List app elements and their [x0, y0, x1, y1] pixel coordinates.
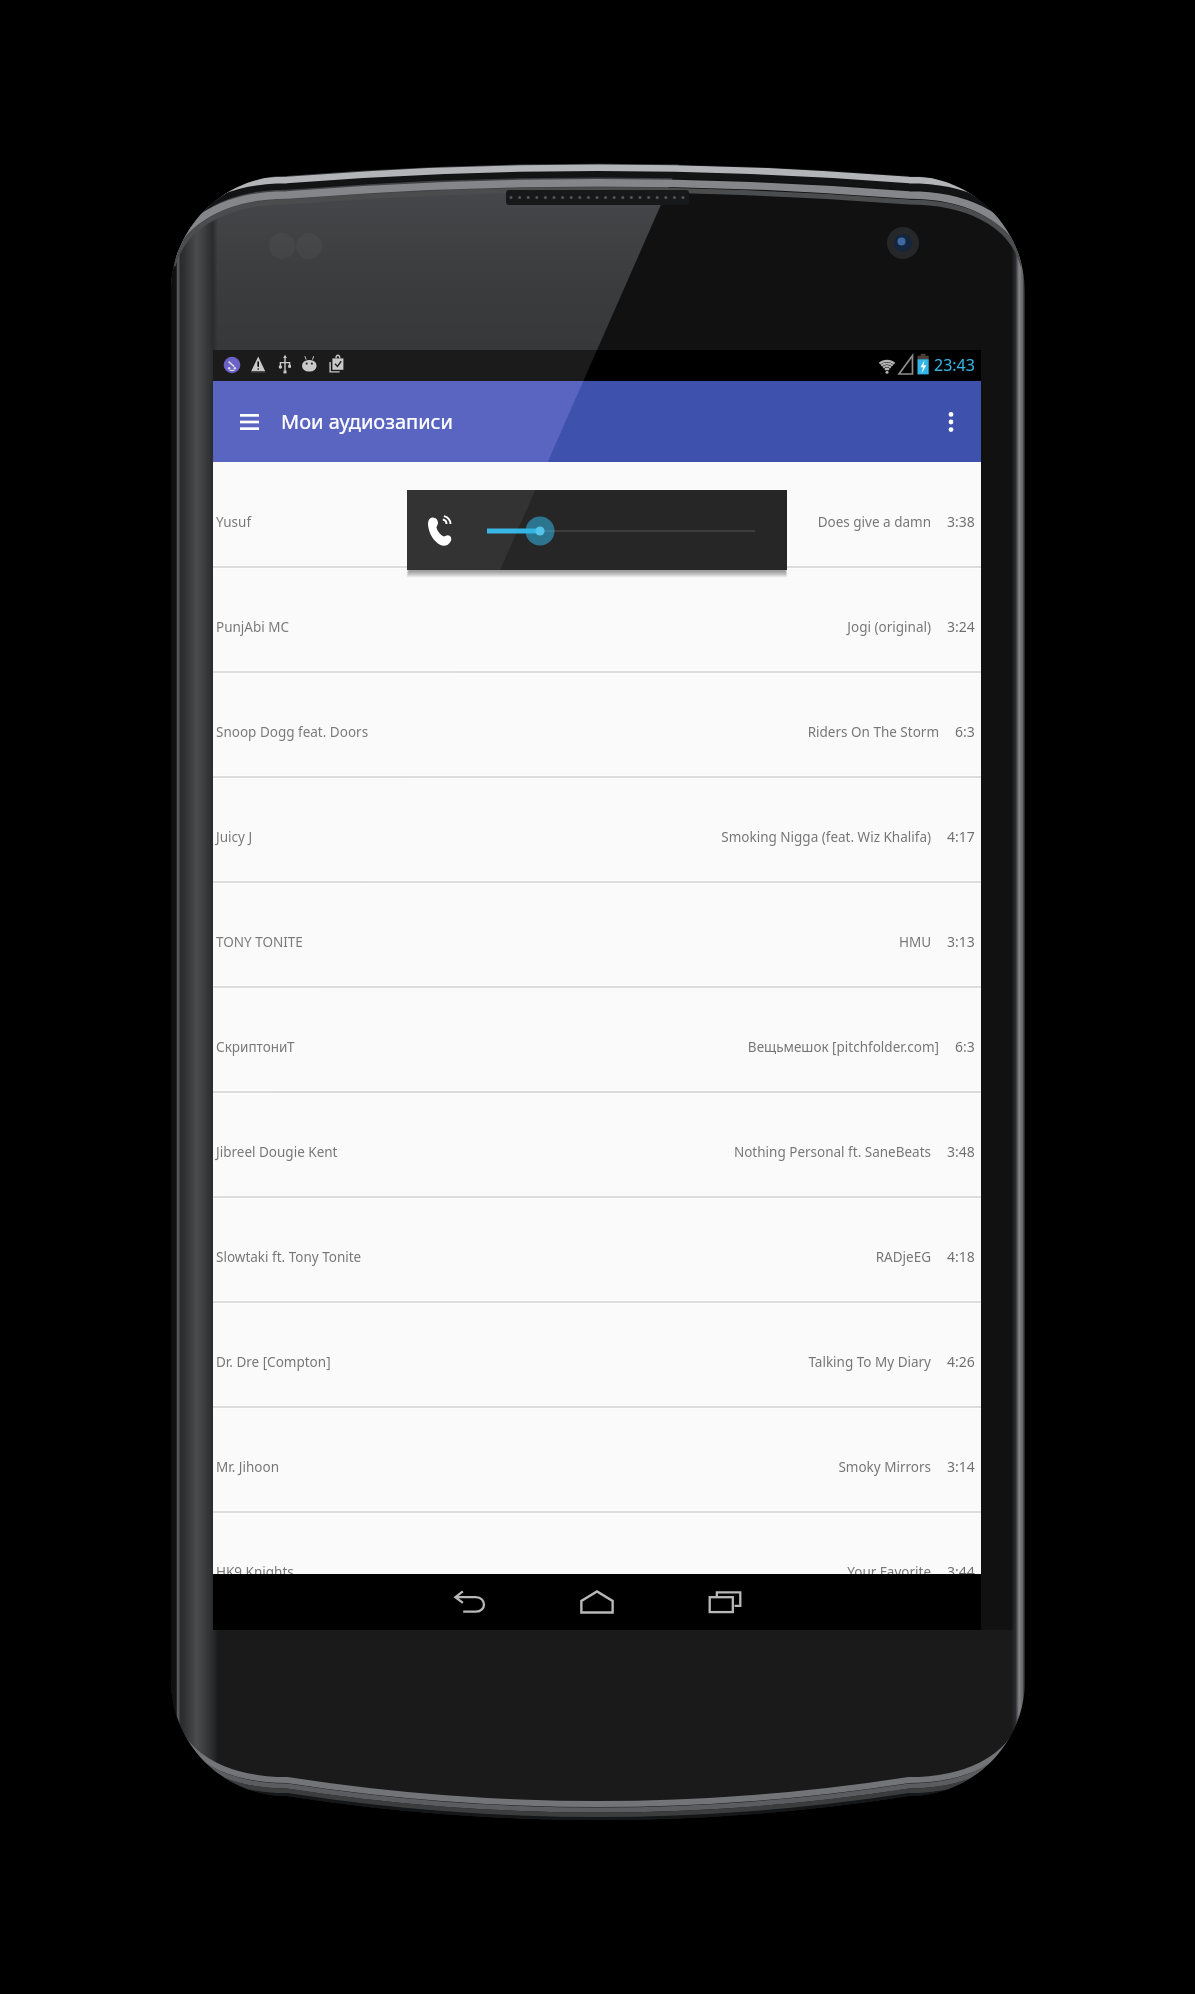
staticText: Nothing Personal ft. SaneBeats — [344, 1143, 931, 1161]
staticText: Smoky Mirrors — [285, 1458, 931, 1476]
button[interactable]: Back — [405, 1574, 533, 1630]
staticText: 4:26 — [947, 1352, 975, 1371]
staticText: HMU — [309, 933, 931, 951]
staticText: Smoking Nigga (feat. Wiz Khalifa) — [259, 828, 931, 846]
staticText: Jibreel Dougie Kent — [216, 1143, 338, 1161]
staticText: Dr. Dre [Compton] — [216, 1353, 331, 1371]
button[interactable]: Juicy J — [213, 779, 981, 884]
staticText: Riders On The Storm — [375, 723, 939, 741]
staticText: 3:48 — [947, 1142, 975, 1161]
button[interactable]: More options — [929, 381, 981, 462]
button[interactable]: Home — [533, 1574, 661, 1630]
staticText: Snoop Dogg feat. Doors — [216, 723, 369, 741]
staticText: Мои аудиозаписи — [281, 408, 453, 435]
staticText: 3:14 — [947, 1457, 975, 1476]
staticText: TONY TONITE — [216, 933, 303, 951]
staticText: 3:13 — [947, 932, 975, 951]
staticText: PunjAbi MC — [216, 618, 290, 636]
staticText: 6:3 — [955, 1037, 975, 1056]
staticText: RADjeEG — [368, 1248, 931, 1266]
staticText: Juicy J — [216, 828, 253, 846]
staticText: HK9 Knights — [216, 1563, 294, 1581]
button[interactable]: TONY TONITE — [213, 884, 981, 989]
button[interactable]: Open navigation drawer — [228, 392, 270, 452]
staticText: 3:38 — [947, 512, 975, 531]
staticText: 6:3 — [955, 722, 975, 741]
staticText: Does give a damn — [258, 513, 931, 531]
staticText: 23:43 — [934, 354, 975, 376]
staticText: 3:44 — [947, 1562, 975, 1581]
staticText: 4:18 — [947, 1247, 975, 1266]
button[interactable]: HK9 Knights — [213, 1514, 981, 1619]
button[interactable]: Jibreel Dougie Kent — [213, 1094, 981, 1199]
staticText: Mr. Jihoon — [216, 1458, 279, 1476]
staticText: 3:24 — [947, 617, 975, 636]
staticText: Вещьмешок [pitchfolder.com] — [301, 1038, 939, 1056]
button[interactable]: Snoop Dogg feat. Doors — [213, 674, 981, 779]
staticText: Slowtaki ft. Tony Tonite — [216, 1248, 362, 1266]
staticText: Yusuf — [216, 513, 252, 531]
staticText: Your Favorite — [300, 1563, 931, 1581]
button[interactable]: СкриптониТ — [213, 989, 981, 1094]
staticText: Talking To My Diary — [337, 1353, 931, 1371]
staticText: 4:17 — [947, 827, 975, 846]
button[interactable]: Yusuf — [213, 464, 981, 569]
button[interactable]: Slowtaki ft. Tony Tonite — [213, 1199, 981, 1304]
button[interactable]: Mr. Jihoon — [213, 1409, 981, 1514]
button[interactable]: Recent apps — [661, 1574, 789, 1630]
button[interactable]: Dr. Dre [Compton] — [213, 1304, 981, 1409]
staticText: СкриптониТ — [216, 1038, 295, 1056]
staticText: Jogi (original) — [296, 618, 931, 636]
button[interactable]: PunjAbi MC — [213, 569, 981, 674]
